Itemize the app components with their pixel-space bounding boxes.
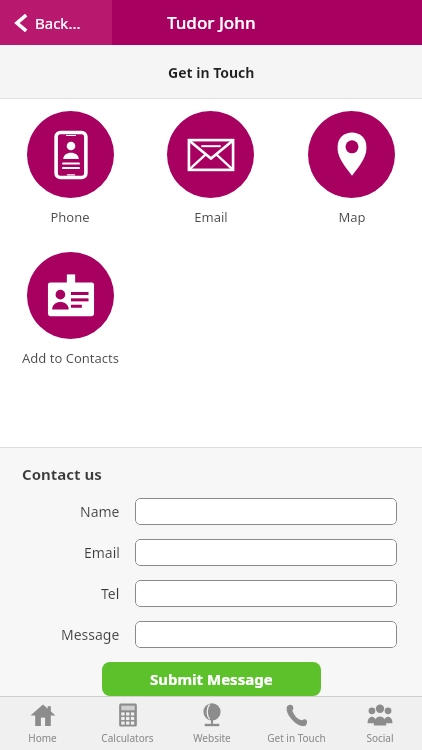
staticText: Tel	[101, 584, 120, 603]
button[interactable]	[135, 498, 397, 525]
button[interactable]	[135, 580, 397, 607]
staticText: Message	[61, 625, 120, 644]
staticText: Home	[28, 731, 57, 745]
button[interactable]: Website	[170, 697, 254, 750]
staticText: Back...	[35, 13, 81, 33]
button[interactable]: Social	[338, 697, 422, 750]
staticText: Get in Touch	[267, 731, 326, 745]
button[interactable]: Submit Message	[102, 662, 321, 696]
button[interactable]: Map	[281, 111, 422, 226]
button[interactable]	[135, 621, 397, 648]
button[interactable]: Get in Touch	[254, 697, 338, 750]
staticText: Contact us	[22, 464, 102, 484]
button[interactable]: Calculators	[85, 697, 170, 750]
staticText: Submit Message	[150, 669, 273, 689]
button[interactable]	[135, 539, 397, 566]
staticText: Social	[366, 731, 394, 745]
staticText: Calculators	[101, 731, 154, 745]
staticText: Add to Contacts	[22, 349, 119, 367]
button[interactable]: Home	[0, 697, 85, 750]
staticText: Website	[193, 731, 231, 745]
staticText: Get in Touch	[168, 63, 255, 82]
staticText: Map	[338, 208, 366, 226]
staticText: Email	[84, 543, 120, 562]
staticText: Phone	[50, 208, 90, 226]
staticText: Name	[80, 502, 120, 521]
button[interactable]: Back...	[0, 0, 112, 45]
button[interactable]: Email	[140, 111, 281, 226]
staticText: Email	[194, 208, 228, 226]
button[interactable]: Phone	[0, 111, 140, 226]
button[interactable]: Add to Contacts	[0, 252, 140, 367]
staticText: Tudor John	[167, 11, 256, 34]
